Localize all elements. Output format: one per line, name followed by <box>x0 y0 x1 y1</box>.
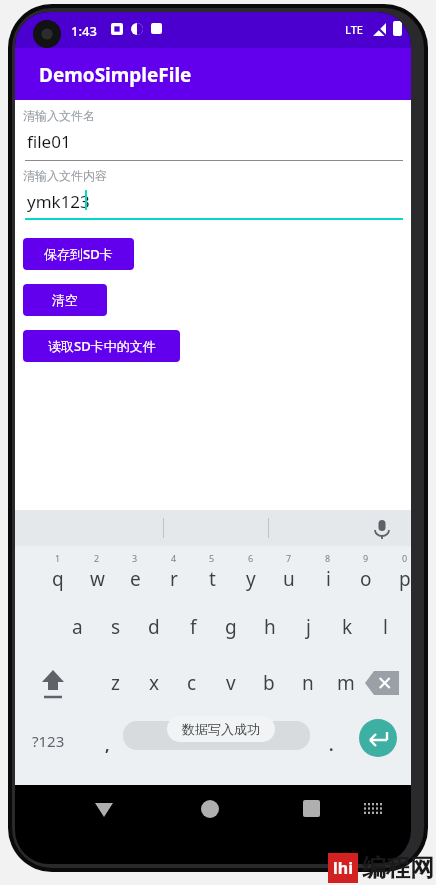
staticText: o <box>360 566 372 592</box>
staticText: p <box>399 566 411 592</box>
button[interactable]: h <box>253 602 287 652</box>
staticText: 1:43 <box>71 22 97 40</box>
staticText: s <box>111 614 121 640</box>
staticText: . <box>329 734 334 756</box>
staticText: n <box>302 670 314 696</box>
staticText: x <box>149 670 160 696</box>
staticText: c <box>187 670 197 696</box>
button[interactable]: Keyboard <box>363 802 383 815</box>
button[interactable]: 6 <box>234 550 268 598</box>
staticText: 1 <box>55 552 61 564</box>
staticText: h <box>264 614 276 640</box>
staticText: 读取SD卡中的文件 <box>48 337 156 355</box>
staticText: q <box>52 566 64 592</box>
button[interactable]: Backspace <box>365 670 399 696</box>
staticText: u <box>283 566 295 592</box>
button[interactable]: Home <box>201 800 219 818</box>
staticText: 9 <box>363 552 369 564</box>
button[interactable]: Voice input <box>371 517 393 539</box>
staticText: i <box>326 566 331 592</box>
button[interactable]: g <box>214 602 248 652</box>
staticText: 清输入文件内容 <box>23 168 107 183</box>
staticText: f <box>190 614 197 640</box>
staticText: e <box>130 566 141 592</box>
staticText: 2 <box>94 552 100 564</box>
button[interactable]: , <box>95 732 119 758</box>
staticText: 4 <box>171 552 177 564</box>
staticText: DemoSimpleFile <box>39 62 192 88</box>
button[interactable]: n <box>291 658 325 708</box>
button[interactable]: Back <box>93 799 115 821</box>
button[interactable]: f <box>176 602 210 652</box>
staticText: t <box>209 566 216 592</box>
button[interactable]: l <box>368 602 402 652</box>
staticText: k <box>342 614 353 640</box>
button[interactable]: 3 <box>118 550 152 598</box>
button[interactable]: 1 <box>41 550 75 598</box>
staticText: a <box>72 614 83 640</box>
staticText: v <box>226 670 236 696</box>
staticText: 编程网 <box>362 853 434 883</box>
staticText: 3 <box>132 552 138 564</box>
button[interactable]: Recents <box>303 800 320 817</box>
button[interactable]: s <box>99 602 133 652</box>
staticText: 保存到SD卡 <box>44 245 113 263</box>
button[interactable]: k <box>330 602 364 652</box>
button[interactable]: a <box>60 602 94 652</box>
button[interactable]: ?123 <box>25 726 71 756</box>
button[interactable]: Shift <box>31 662 75 706</box>
button[interactable]: Enter <box>359 719 397 757</box>
staticText: 数据写入成功 <box>182 721 260 737</box>
staticText: z <box>111 670 120 696</box>
button[interactable]: 保存到SD卡 <box>23 238 134 270</box>
button[interactable]: 读取SD卡中的文件 <box>23 330 180 362</box>
staticText: 5 <box>209 552 215 564</box>
button[interactable]: d <box>137 602 171 652</box>
staticText: d <box>148 614 160 640</box>
staticText: g <box>225 614 237 640</box>
staticText: 清空 <box>52 292 78 308</box>
staticText: 清输入文件名 <box>23 108 95 123</box>
button[interactable]: 9 <box>349 550 383 598</box>
staticText: file01 <box>27 130 71 153</box>
button[interactable]: x <box>137 658 171 708</box>
button[interactable]: 8 <box>311 550 345 598</box>
staticText: b <box>263 670 275 696</box>
staticText: , <box>105 734 110 756</box>
staticText: ?123 <box>32 731 65 751</box>
button[interactable]: v <box>214 658 248 708</box>
staticText: 6 <box>248 552 254 564</box>
button[interactable]: 7 <box>272 550 306 598</box>
staticText: r <box>170 566 178 592</box>
staticText: m <box>337 670 355 696</box>
button[interactable]: z <box>98 658 132 708</box>
staticText: lhi <box>333 857 353 879</box>
staticText: 8 <box>325 552 331 564</box>
staticText: 7 <box>286 552 292 564</box>
staticText: LTE <box>345 22 363 37</box>
button[interactable]: 清空 <box>23 284 107 316</box>
button[interactable]: 2 <box>80 550 114 598</box>
button[interactable]: j <box>291 602 325 652</box>
staticText: ymk123 <box>27 190 90 213</box>
button[interactable]: 0 <box>388 550 411 598</box>
button[interactable]: 5 <box>195 550 229 598</box>
staticText: j <box>306 614 311 640</box>
staticText: l <box>383 614 388 640</box>
button[interactable]: c <box>175 658 209 708</box>
staticText: w <box>90 566 105 592</box>
button[interactable]: . <box>321 732 341 758</box>
button[interactable]: 4 <box>157 550 191 598</box>
staticText: 0 <box>402 552 408 564</box>
button[interactable]: Space <box>123 721 310 750</box>
button[interactable]: b <box>252 658 286 708</box>
button[interactable]: m <box>329 658 363 708</box>
staticText: y <box>246 566 256 592</box>
